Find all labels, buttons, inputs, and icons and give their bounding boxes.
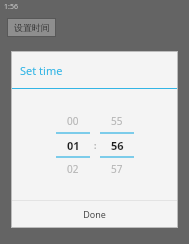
staticText: 00: [67, 114, 79, 128]
staticText: :: [94, 139, 97, 151]
staticText: 56: [111, 138, 124, 153]
button[interactable]: 设置时间: [8, 19, 55, 36]
button[interactable]: Minute: [100, 110, 134, 180]
staticText: Done: [83, 208, 106, 220]
button[interactable]: Hour: [56, 110, 90, 180]
staticText: 1:56: [4, 2, 18, 12]
staticText: Set time: [20, 63, 63, 78]
staticText: 57: [111, 162, 123, 176]
staticText: 01: [67, 138, 80, 153]
staticText: 设置时间: [14, 22, 50, 33]
button[interactable]: Done: [12, 201, 177, 227]
staticText: 55: [111, 114, 123, 128]
staticText: 02: [67, 162, 79, 176]
